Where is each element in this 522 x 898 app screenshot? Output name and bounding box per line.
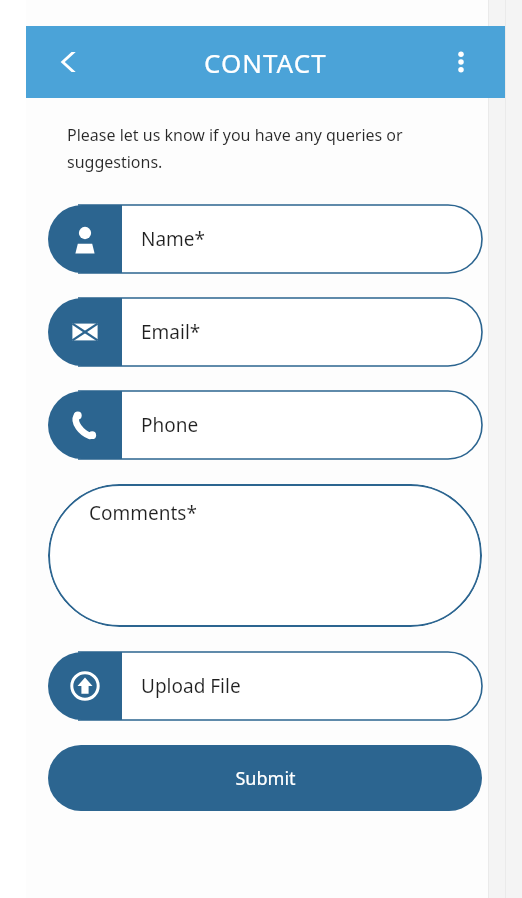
button[interactable]: Comments* — [48, 484, 482, 627]
staticText: Phone — [141, 412, 199, 438]
button[interactable]: Back — [46, 38, 94, 86]
button[interactable]: Email* — [48, 298, 482, 366]
staticText: CONTACT — [204, 45, 327, 80]
button[interactable]: More options — [439, 40, 483, 84]
button[interactable]: Phone — [48, 391, 482, 459]
button[interactable]: Submit — [48, 745, 482, 811]
staticText: Email* — [141, 319, 201, 345]
staticText: Name* — [141, 226, 206, 252]
button[interactable]: Name* — [48, 205, 482, 273]
button[interactable]: Upload File — [48, 652, 482, 720]
staticText: Submit — [235, 766, 296, 791]
staticText: Please let us know if you have any queri… — [67, 124, 458, 173]
staticText: Upload File — [141, 673, 241, 699]
staticText: Comments* — [89, 500, 197, 526]
